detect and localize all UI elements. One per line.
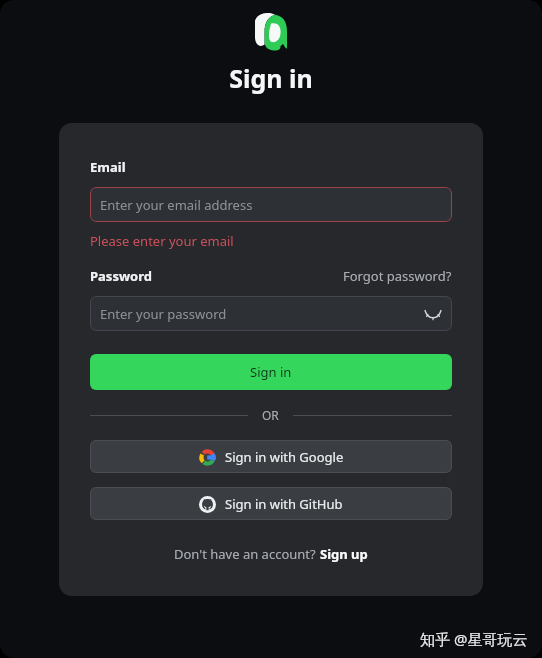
button[interactable]: Sign in with Google <box>90 440 452 473</box>
staticText: 知乎 @星哥玩云 <box>420 629 528 649</box>
button[interactable]: Forgot password? <box>343 267 452 285</box>
button[interactable]: Enter your email address <box>90 187 452 222</box>
staticText: Sign up <box>320 545 368 563</box>
button[interactable]: Sign up <box>320 545 368 563</box>
button[interactable]: Enter your password <box>90 296 452 331</box>
staticText: Enter your password <box>100 305 227 323</box>
staticText: Enter your email address <box>100 196 253 214</box>
button[interactable]: Sign in with GitHub <box>90 487 452 520</box>
staticText: Password <box>90 267 152 285</box>
button[interactable]: Sign in <box>90 354 452 390</box>
staticText: Forgot password? <box>343 267 452 285</box>
staticText: Email <box>90 158 126 176</box>
staticText: OR <box>262 407 279 423</box>
staticText: Please enter your email <box>90 232 234 250</box>
button[interactable]: Show password <box>422 303 444 325</box>
other: Logo <box>251 11 291 53</box>
staticText: Sign in <box>229 61 313 95</box>
staticText: Don't have an account? <box>174 545 320 563</box>
staticText: Sign in with Google <box>225 448 344 466</box>
staticText: Sign in <box>250 363 292 381</box>
staticText: Sign in with GitHub <box>225 495 343 513</box>
